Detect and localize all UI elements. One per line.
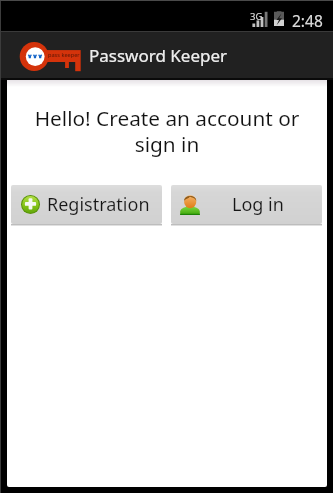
other: Account: [180, 195, 200, 215]
staticText: 2:48: [292, 10, 323, 30]
button[interactable]: Account: [171, 185, 322, 226]
staticText: Password Keeper: [89, 44, 228, 67]
staticText: 3G: [250, 10, 263, 23]
staticText: pass keeper: [48, 51, 80, 59]
other: Add: [21, 195, 40, 214]
staticText: Hello! Create an account or sign in: [19, 104, 315, 158]
button[interactable]: Add: [11, 185, 162, 226]
staticText: Log in: [232, 192, 284, 217]
staticText: Registration: [47, 192, 150, 217]
